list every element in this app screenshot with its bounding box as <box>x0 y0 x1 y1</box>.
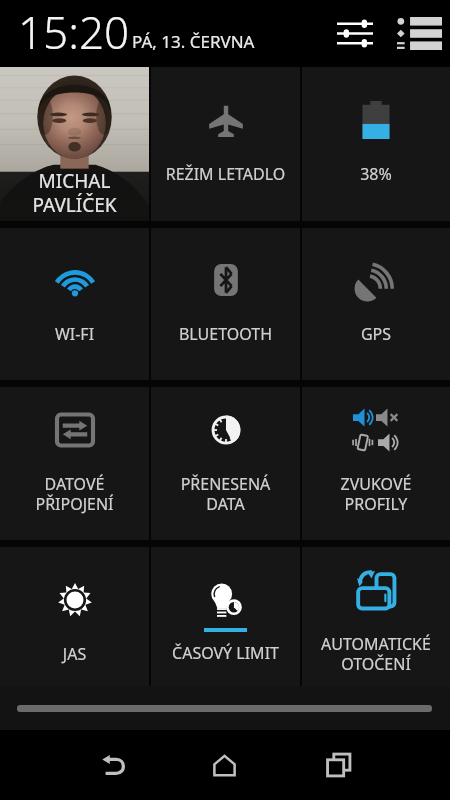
button[interactable]: AUTOMATICKÉ OTOČENÍ <box>302 547 450 686</box>
staticText: REŽIM LETADLO <box>151 163 300 185</box>
staticText: DATOVÉ PŘIPOJENÍ <box>0 473 149 514</box>
staticText: BLUETOOTH <box>151 323 300 345</box>
button[interactable]: Quick settings <box>327 7 383 59</box>
button[interactable]: 38% <box>302 67 450 221</box>
staticText: PŘENESENÁ DATA <box>151 473 300 514</box>
staticText: ČASOVÝ LIMIT <box>151 642 300 664</box>
button[interactable]: Recent apps <box>300 730 377 800</box>
button[interactable]: MICHAL PAVLÍČEK <box>0 67 149 221</box>
button[interactable]: DATOVÉ PŘIPOJENÍ <box>0 387 149 540</box>
button[interactable]: Home <box>186 730 263 800</box>
button[interactable]: GPS <box>302 228 450 380</box>
staticText: JAS <box>0 643 149 665</box>
staticText: 15:20 <box>18 2 130 62</box>
button[interactable]: Notifications <box>389 7 450 59</box>
staticText: MICHAL PAVLÍČEK <box>32 168 117 217</box>
button[interactable]: REŽIM LETADLO <box>151 67 300 221</box>
button[interactable]: ZVUKOVÉ PROFILY <box>302 387 450 540</box>
button[interactable]: Back <box>75 730 152 800</box>
staticText: 38% <box>302 163 450 185</box>
button[interactable]: PŘENESENÁ DATA <box>151 387 300 540</box>
button[interactable]: WI-FI <box>0 228 149 380</box>
staticText: WI-FI <box>0 323 149 345</box>
staticText: GPS <box>302 323 450 345</box>
button[interactable]: JAS <box>0 547 149 686</box>
button[interactable]: ČASOVÝ LIMIT <box>151 547 300 686</box>
staticText: PÁ, 13. ČERVNA <box>132 30 255 53</box>
staticText: ZVUKOVÉ PROFILY <box>302 473 450 514</box>
staticText: AUTOMATICKÉ OTOČENÍ <box>302 633 450 674</box>
button[interactable]: BLUETOOTH <box>151 228 300 380</box>
